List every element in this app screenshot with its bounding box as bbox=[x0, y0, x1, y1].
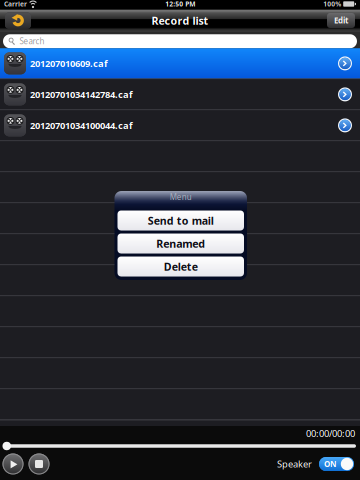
staticText: 100% bbox=[323, 0, 341, 8]
staticText: 20120701034142784.caf bbox=[30, 88, 133, 101]
button[interactable]: Speaker on bbox=[319, 457, 354, 471]
button[interactable]: Play bbox=[2, 453, 23, 474]
staticText: Search bbox=[19, 36, 44, 46]
staticText: Send to mail bbox=[148, 213, 214, 228]
staticText: 20120701034100044.caf bbox=[30, 119, 133, 132]
staticText: Edit bbox=[334, 15, 348, 26]
staticText: Speaker bbox=[277, 458, 312, 470]
staticText: Carrier bbox=[4, 0, 27, 8]
button[interactable]: Delete bbox=[117, 256, 244, 276]
staticText: 00:00/00:00 bbox=[306, 427, 355, 440]
button[interactable]: 201207010609.caf bbox=[0, 48, 360, 78]
staticText: 12:50 PM bbox=[165, 0, 195, 8]
button[interactable]: Back bbox=[5, 12, 31, 28]
button[interactable]: Renamed bbox=[117, 233, 244, 253]
button[interactable]: Stop bbox=[28, 453, 49, 474]
button[interactable]: 20120701034100044.caf bbox=[0, 110, 360, 140]
button[interactable]: 20120701034142784.caf bbox=[0, 79, 360, 109]
staticText: ON bbox=[324, 459, 337, 469]
staticText: Menu bbox=[170, 192, 192, 202]
staticText: Renamed bbox=[156, 236, 205, 251]
staticText: Delete bbox=[164, 259, 198, 274]
staticText: Record list bbox=[151, 13, 208, 28]
button[interactable]: Edit bbox=[327, 13, 355, 28]
staticText: 201207010609.caf bbox=[30, 57, 108, 70]
button[interactable]: Send to mail bbox=[117, 210, 244, 230]
